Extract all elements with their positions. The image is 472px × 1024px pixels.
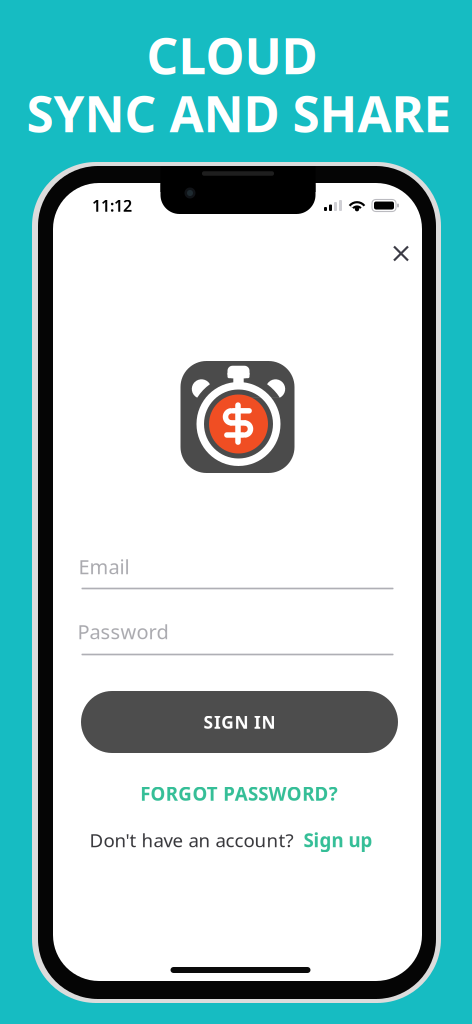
staticText: SIGN IN xyxy=(204,710,275,733)
staticText: Password xyxy=(77,618,168,645)
button[interactable]: SIGN IN xyxy=(81,691,398,753)
staticText: SYNC AND SHARE xyxy=(26,80,451,146)
staticText: Don't have an account? xyxy=(89,828,293,852)
button[interactable]: Close xyxy=(379,231,423,275)
staticText: 11:12 xyxy=(92,195,132,216)
button[interactable]: FORGOT PASSWORD? xyxy=(119,776,359,810)
staticText: FORGOT PASSWORD? xyxy=(140,781,338,806)
staticText: Email xyxy=(78,553,129,580)
button[interactable]: Sign up xyxy=(303,828,372,852)
staticText: Sign up xyxy=(303,828,372,852)
staticText: CLOUD xyxy=(146,22,317,88)
